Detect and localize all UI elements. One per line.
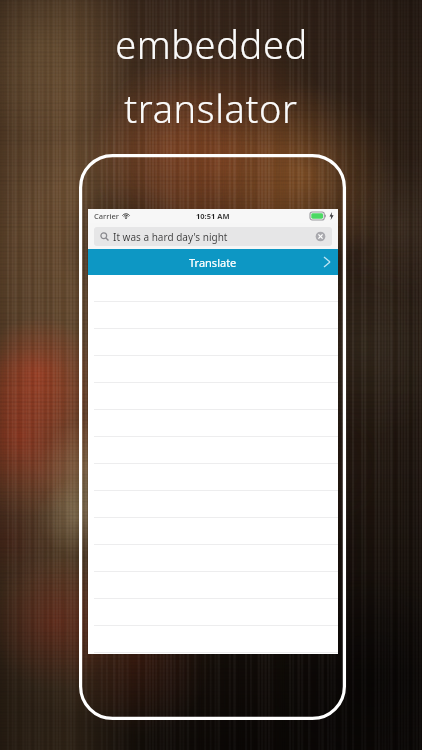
button[interactable] bbox=[88, 275, 338, 302]
button[interactable]: Clear text bbox=[315, 231, 326, 242]
staticText: embedded bbox=[115, 18, 308, 70]
button[interactable] bbox=[88, 599, 338, 626]
staticText: Translate bbox=[189, 255, 237, 270]
button[interactable]: It was a hard day's night bbox=[94, 227, 332, 246]
button[interactable] bbox=[88, 302, 338, 329]
button[interactable] bbox=[88, 626, 338, 653]
staticText: 10:51 AM bbox=[196, 211, 230, 221]
button[interactable] bbox=[88, 518, 338, 545]
button[interactable] bbox=[88, 491, 338, 518]
staticText: translator bbox=[124, 82, 298, 134]
button[interactable] bbox=[88, 356, 338, 383]
button[interactable] bbox=[88, 545, 338, 572]
button[interactable] bbox=[88, 572, 338, 599]
button[interactable] bbox=[88, 437, 338, 464]
button[interactable] bbox=[88, 410, 338, 437]
staticText: Carrier bbox=[94, 211, 119, 221]
button[interactable] bbox=[88, 383, 338, 410]
button[interactable] bbox=[88, 464, 338, 491]
staticText: It was a hard day's night bbox=[113, 230, 228, 244]
button[interactable]: Translate bbox=[88, 249, 338, 275]
button[interactable] bbox=[88, 329, 338, 356]
